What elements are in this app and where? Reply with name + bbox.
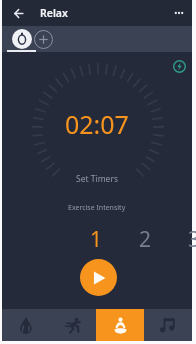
- button[interactable]: Calories: [2, 309, 49, 341]
- button[interactable]: 2: [121, 225, 170, 249]
- button[interactable]: 1: [72, 225, 121, 249]
- staticText: Set Timers: [76, 173, 118, 185]
- button[interactable]: 3: [170, 225, 196, 249]
- staticText: 1: [90, 225, 103, 249]
- staticText: 2: [139, 225, 152, 249]
- button[interactable]: Run: [49, 309, 96, 341]
- button[interactable]: Timer tab: [2, 26, 42, 52]
- staticText: 02:07: [65, 107, 129, 141]
- button[interactable]: Relax: [96, 309, 144, 341]
- button[interactable]: Back: [2, 0, 34, 26]
- button[interactable]: Music: [144, 309, 192, 341]
- staticText: Exercise Intensity: [68, 203, 126, 213]
- button[interactable]: Start: [80, 259, 117, 296]
- button[interactable]: Set Timers: [2, 169, 192, 188]
- button[interactable]: More options: [166, 0, 192, 26]
- staticText: Relax: [40, 6, 68, 20]
- staticText: 3: [188, 225, 196, 249]
- button[interactable]: Energy: [171, 58, 188, 75]
- button[interactable]: Add timer: [23, 26, 63, 52]
